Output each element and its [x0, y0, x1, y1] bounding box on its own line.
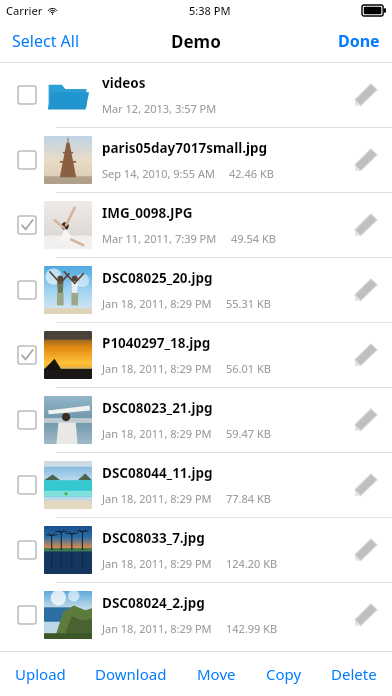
staticText: 77.84 KB: [226, 491, 271, 506]
button[interactable]: Delete: [325, 654, 383, 694]
staticText: Jan 18, 2011, 8:29 PM: [102, 491, 212, 506]
button[interactable]: Rename DSC08025_20.jpg: [344, 268, 388, 312]
staticText: Sep 14, 2010, 9:55 AM: [102, 166, 215, 181]
button[interactable]: Select videos: [18, 86, 36, 104]
button[interactable]: Rename DSC08044_11.jpg: [344, 463, 388, 507]
staticText: 59.47 KB: [226, 426, 271, 441]
staticText: Jan 18, 2011, 8:29 PM: [102, 556, 212, 571]
staticText: DSC08025_20.jpg: [102, 269, 213, 287]
staticText: 42.46 KB: [229, 166, 274, 181]
button[interactable]: Select DSC08025_20.jpg: [0, 258, 392, 322]
staticText: Upload: [15, 664, 66, 684]
button[interactable]: Select paris05day7017small.jpg: [0, 128, 392, 192]
staticText: Copy: [266, 664, 302, 684]
staticText: Jan 18, 2011, 8:29 PM: [102, 361, 212, 376]
staticText: Jan 18, 2011, 8:29 PM: [102, 621, 212, 636]
button[interactable]: Select IMG_0098.JPG: [18, 216, 36, 234]
button[interactable]: Select DSC08024_2.jpg: [0, 583, 392, 647]
staticText: Jan 18, 2011, 8:29 PM: [102, 296, 212, 311]
button[interactable]: Select DSC08023_21.jpg: [0, 388, 392, 452]
button[interactable]: Rename paris05day7017small.jpg: [344, 138, 388, 182]
staticText: 55.31 KB: [226, 296, 271, 311]
staticText: 5:38 PM: [189, 3, 231, 18]
button[interactable]: Select DSC08044_11.jpg: [0, 453, 392, 517]
staticText: 49.54 KB: [231, 231, 276, 246]
button[interactable]: Rename P1040297_18.jpg: [344, 333, 388, 377]
staticText: Mar 11, 2011, 7:39 PM: [102, 231, 217, 246]
button[interactable]: Select P1040297_18.jpg: [0, 323, 392, 387]
staticText: videos: [102, 74, 146, 92]
button[interactable]: Select IMG_0098.JPG: [0, 193, 392, 257]
button[interactable]: Copy: [260, 654, 308, 694]
button[interactable]: Select DSC08044_11.jpg: [18, 476, 36, 494]
staticText: Demo: [171, 30, 221, 53]
button[interactable]: Select paris05day7017small.jpg: [18, 151, 36, 169]
staticText: Move: [197, 664, 236, 684]
button[interactable]: Select P1040297_18.jpg: [18, 346, 36, 364]
staticText: Carrier: [6, 3, 43, 18]
button[interactable]: Select DSC08033_7.jpg: [18, 541, 36, 559]
staticText: DSC08044_11.jpg: [102, 464, 213, 482]
button[interactable]: Move: [191, 654, 242, 694]
button[interactable]: Upload: [9, 654, 72, 694]
button[interactable]: Rename DSC08023_21.jpg: [344, 398, 388, 442]
button[interactable]: Rename IMG_0098.JPG: [344, 203, 388, 247]
staticText: DSC08023_21.jpg: [102, 399, 213, 417]
staticText: Mar 12, 2013, 3:57 PM: [102, 101, 217, 116]
staticText: Download: [95, 664, 167, 684]
button[interactable]: Select DSC08033_7.jpg: [0, 518, 392, 582]
staticText: IMG_0098.JPG: [102, 204, 193, 222]
staticText: DSC08033_7.jpg: [102, 529, 205, 547]
staticText: Jan 18, 2011, 8:29 PM: [102, 426, 212, 441]
button[interactable]: Rename DSC08033_7.jpg: [344, 528, 388, 572]
button[interactable]: Select All: [0, 22, 92, 60]
button[interactable]: Rename DSC08024_2.jpg: [344, 593, 388, 637]
button[interactable]: Download: [89, 654, 173, 694]
staticText: DSC08024_2.jpg: [102, 594, 205, 612]
staticText: 142.99 KB: [226, 621, 278, 636]
staticText: P1040297_18.jpg: [102, 334, 211, 352]
staticText: 124.20 KB: [226, 556, 278, 571]
staticText: 56.01 KB: [226, 361, 271, 376]
staticText: Delete: [331, 664, 377, 684]
button[interactable]: Select DSC08024_2.jpg: [18, 606, 36, 624]
button[interactable]: Done: [326, 22, 392, 60]
button[interactable]: Select DSC08025_20.jpg: [18, 281, 36, 299]
staticText: Select All: [12, 30, 80, 52]
button[interactable]: Select videos: [0, 63, 392, 127]
staticText: paris05day7017small.jpg: [102, 139, 268, 157]
button[interactable]: Rename videos: [344, 73, 388, 117]
button[interactable]: Select DSC08023_21.jpg: [18, 411, 36, 429]
staticText: Done: [338, 30, 380, 52]
